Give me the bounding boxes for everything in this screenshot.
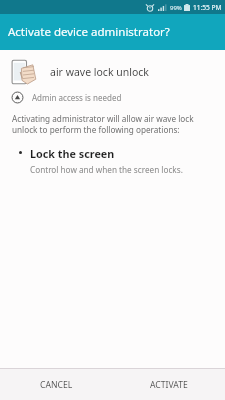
staticText: Activate device administrator? xyxy=(8,24,170,40)
staticText: air wave lock unlock xyxy=(50,65,149,79)
button[interactable]: Collapse admin details xyxy=(0,87,225,106)
button[interactable]: ACTIVATE xyxy=(112,369,225,400)
staticText: CANCEL xyxy=(40,379,73,391)
staticText: Lock the screen xyxy=(30,146,115,161)
staticText: Activating administrator will allow air … xyxy=(12,113,207,135)
other: Collapse admin details xyxy=(11,91,24,104)
staticText: 11:55 PM xyxy=(193,3,222,12)
staticText: 99% xyxy=(170,4,182,12)
staticText: Admin access is needed xyxy=(32,92,122,103)
staticText: ACTIVATE xyxy=(150,379,188,391)
staticText: Control how and when the screen locks. xyxy=(30,164,183,175)
button[interactable]: CANCEL xyxy=(0,369,112,400)
